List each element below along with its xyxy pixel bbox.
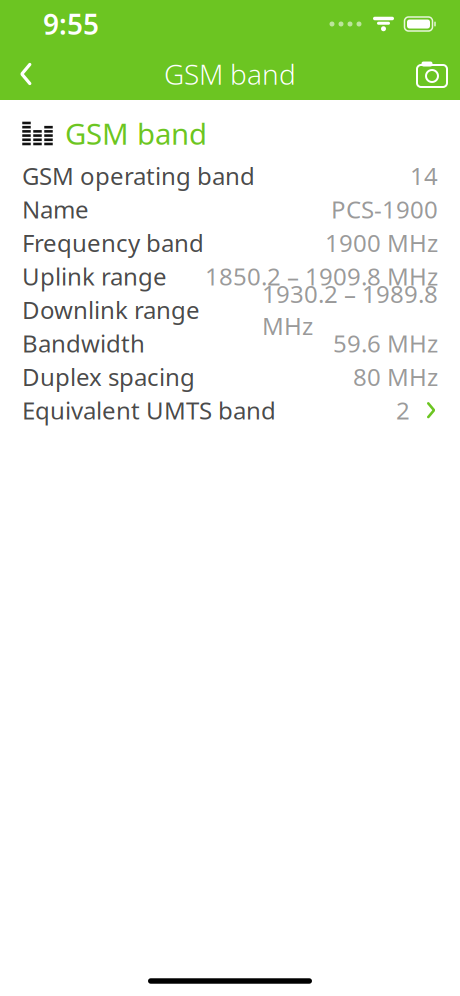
- staticText: 1930.2 – 1989.8 MHz: [262, 278, 438, 341]
- staticText: 59.6 MHz: [333, 327, 438, 359]
- staticText: Bandwidth: [22, 327, 145, 359]
- staticText: Uplink range: [22, 260, 167, 292]
- staticText: 80 MHz: [353, 361, 438, 393]
- staticText: 9:55: [43, 5, 99, 43]
- button[interactable]: Camera: [404, 48, 460, 100]
- staticText: 1850.2 – 1909.8 MHz: [205, 260, 438, 292]
- button[interactable]: Back: [0, 48, 52, 100]
- staticText: GSM band: [164, 55, 296, 93]
- staticText: Frequency band: [22, 227, 204, 259]
- staticText: Duplex spacing: [22, 361, 195, 393]
- button[interactable]: Equivalent UMTS band: [22, 393, 438, 427]
- staticText: GSM operating band: [22, 160, 255, 192]
- staticText: 1900 MHz: [325, 227, 438, 259]
- staticText: 14: [410, 160, 438, 192]
- staticText: Downlink range: [22, 294, 200, 326]
- staticText: 2: [396, 394, 410, 426]
- staticText: GSM band: [65, 114, 207, 153]
- staticText: PCS-1900: [331, 193, 438, 225]
- staticText: Equivalent UMTS band: [22, 394, 276, 426]
- staticText: Name: [22, 193, 89, 225]
